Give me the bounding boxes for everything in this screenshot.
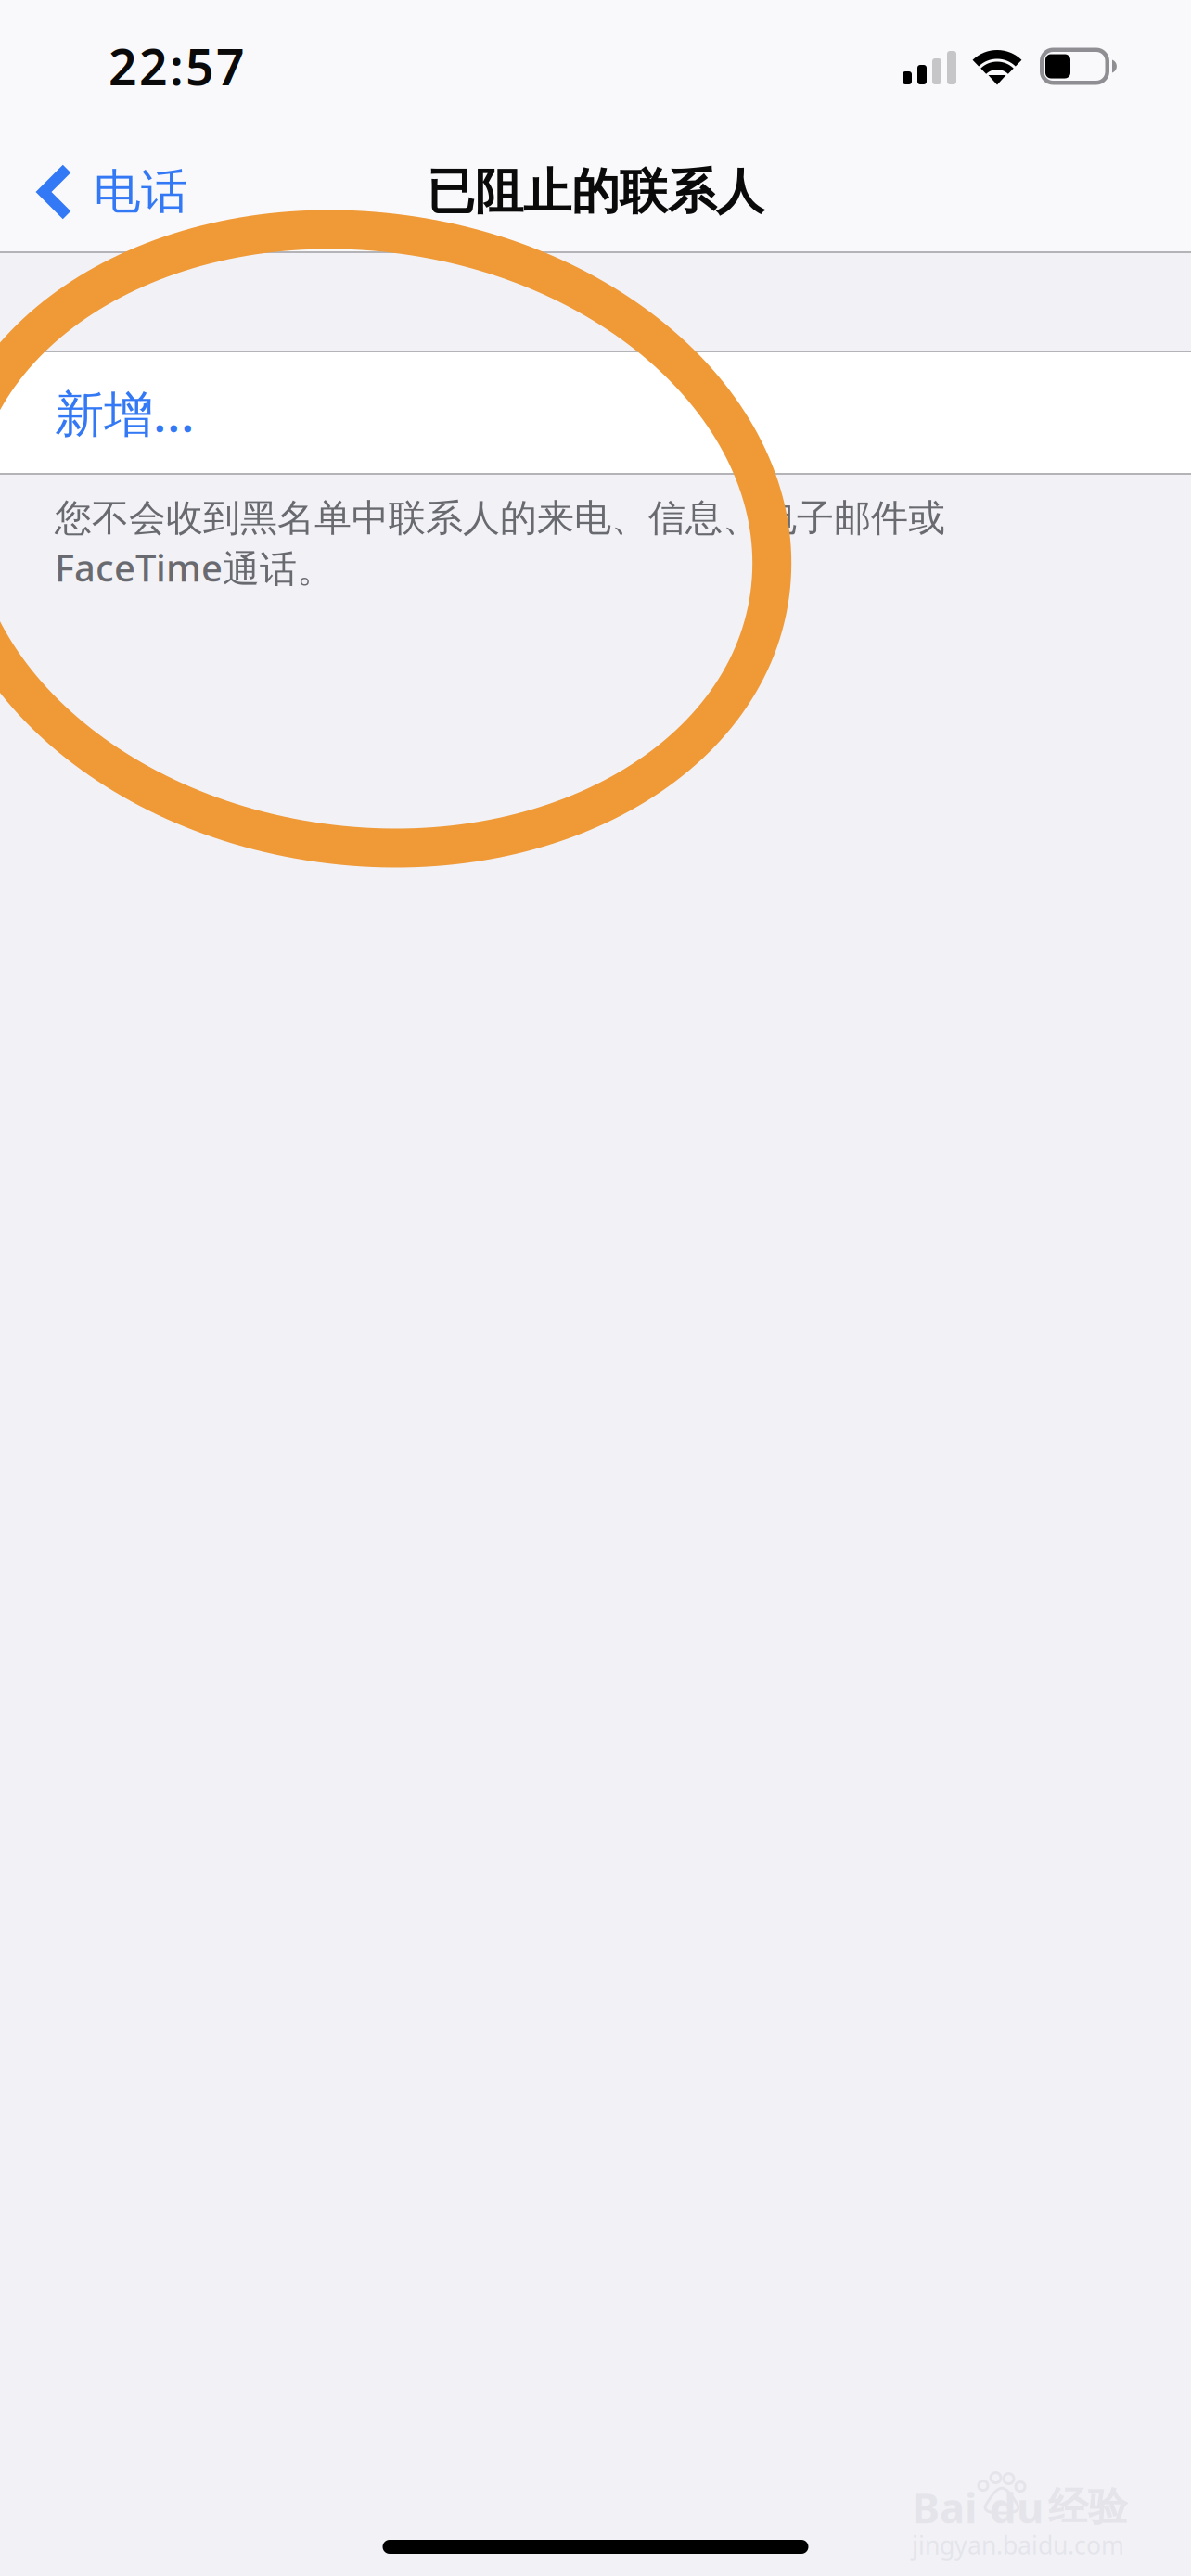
staticText: 新增... <box>55 380 195 445</box>
staticText: 经验 <box>1048 2483 1128 2531</box>
staticText: 22:57 <box>109 33 245 99</box>
staticText: 电话 <box>94 163 188 221</box>
staticText: Bai <box>912 2479 978 2535</box>
staticText: 已阻止的联系人 <box>427 162 764 222</box>
staticText: du <box>990 2479 1044 2535</box>
button[interactable]: 电话 <box>0 131 216 253</box>
staticText: 您不会收到黑名单中联系人的来电、信息、电子邮件或FaceTime通话。 <box>55 495 945 592</box>
staticText: jingyan.baidu.com <box>912 2528 1124 2561</box>
button[interactable]: 新增... <box>0 351 1191 475</box>
